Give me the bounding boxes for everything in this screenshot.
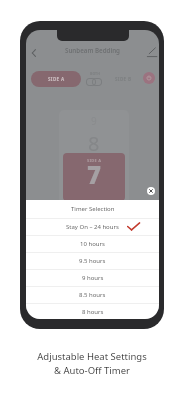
- button[interactable]: SIDE A: [63, 153, 125, 201]
- button[interactable]: Stay On – 24 hours: [26, 218, 159, 235]
- staticText: 9.5 hours: [79, 257, 106, 265]
- button[interactable]: 10 hours: [26, 235, 159, 252]
- staticText: 8.5 hours: [79, 291, 106, 299]
- button[interactable]: SIDE A: [31, 71, 81, 87]
- button[interactable]: Edit: [145, 46, 159, 60]
- button[interactable]: SIDE B: [113, 74, 134, 84]
- staticText: Adjustable Heat Settings & Auto-Off Time…: [37, 350, 147, 377]
- button[interactable]: 9 hours: [26, 269, 159, 286]
- staticText: Stay On – 24 hours: [66, 223, 119, 231]
- button[interactable]: Back: [28, 47, 40, 59]
- button[interactable]: 8.5 hours: [26, 286, 159, 303]
- staticText: Sunbeam Bedding: [65, 46, 120, 54]
- staticText: 8: [88, 130, 100, 157]
- staticText: 9 hours: [82, 274, 104, 282]
- button[interactable]: Both sides: [84, 71, 105, 87]
- staticText: 7: [87, 158, 102, 191]
- button[interactable]: Power: [143, 72, 155, 84]
- staticText: BOTH: [90, 71, 100, 76]
- button[interactable]: Close: [147, 187, 155, 195]
- button[interactable]: 9.5 hours: [26, 252, 159, 269]
- staticText: SIDE A: [87, 158, 102, 163]
- staticText: 8 hours: [82, 308, 104, 316]
- staticText: SIDE A: [48, 76, 65, 82]
- button[interactable]: 8 hours: [26, 303, 159, 319]
- staticText: 10 hours: [80, 240, 105, 248]
- staticText: Timer Selection: [71, 205, 115, 213]
- staticText: SIDE B: [115, 76, 132, 82]
